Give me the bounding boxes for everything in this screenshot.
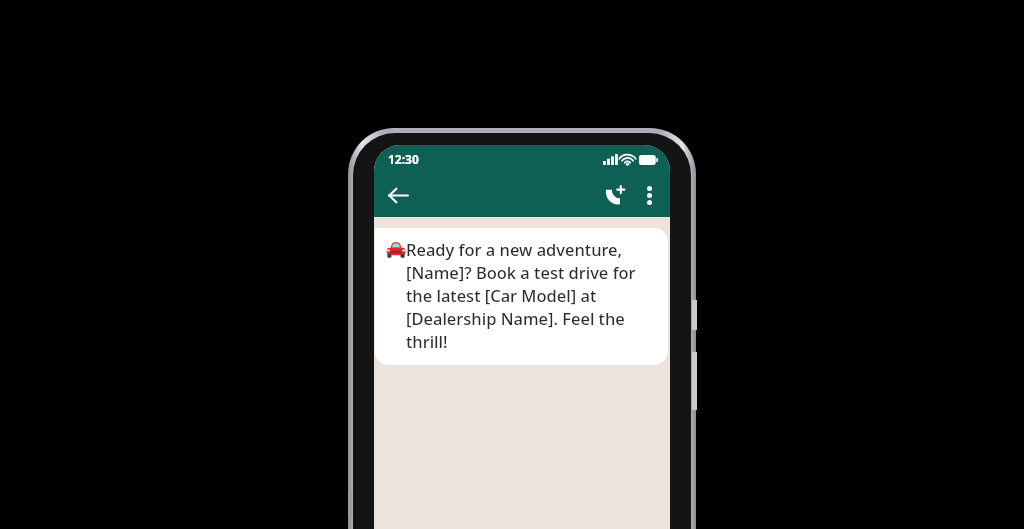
staticText: 12:30 (388, 151, 419, 167)
button[interactable]: More options (632, 178, 666, 212)
button[interactable]: Back (380, 177, 416, 213)
button[interactable]: Ready for a new adventure, [Name]? Book … (375, 228, 668, 365)
staticText: Ready for a new adventure, [Name]? Book … (406, 238, 658, 353)
button[interactable]: Add call (596, 177, 632, 213)
